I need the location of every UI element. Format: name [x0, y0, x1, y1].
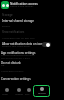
- staticText: App notifications settings: [1, 51, 36, 55]
- staticText: Allow notification dots on icons: [2, 42, 45, 46]
- staticText: Home: [2, 93, 8, 96]
- staticText: Device & app settings: [10, 5, 34, 8]
- staticText: Notification dot on app icon: [2, 36, 35, 39]
- staticText: Notification history: [1, 69, 24, 72]
- staticText: Calls: [25, 93, 30, 96]
- staticText: Conversation settings: [1, 77, 31, 81]
- staticText: Storage: [2, 13, 13, 17]
- staticText: See all from the last 7 days: [1, 57, 30, 60]
- staticText: Recently sent notifications: [2, 45, 31, 48]
- button[interactable]: App icon: [1, 1, 9, 9]
- button[interactable]: Calls: [27, 88, 31, 92]
- staticText: Battery: [2, 24, 11, 27]
- button[interactable]: Settings: [33, 85, 50, 97]
- staticText: Updates: [15, 93, 23, 96]
- staticText: Do not disturb: [1, 61, 21, 65]
- button[interactable]: Toggle notifications: [42, 42, 51, 47]
- staticText: Internal shared storage: [2, 19, 34, 23]
- staticText: Control notifications from apps: [1, 54, 35, 57]
- button[interactable]: Home: [5, 88, 9, 92]
- staticText: Notification access: [10, 2, 38, 6]
- staticText: Settings: [38, 92, 46, 95]
- button[interactable]: Updates: [17, 88, 21, 92]
- staticText: Off: [1, 64, 5, 67]
- staticText: Show notifications: [2, 30, 25, 34]
